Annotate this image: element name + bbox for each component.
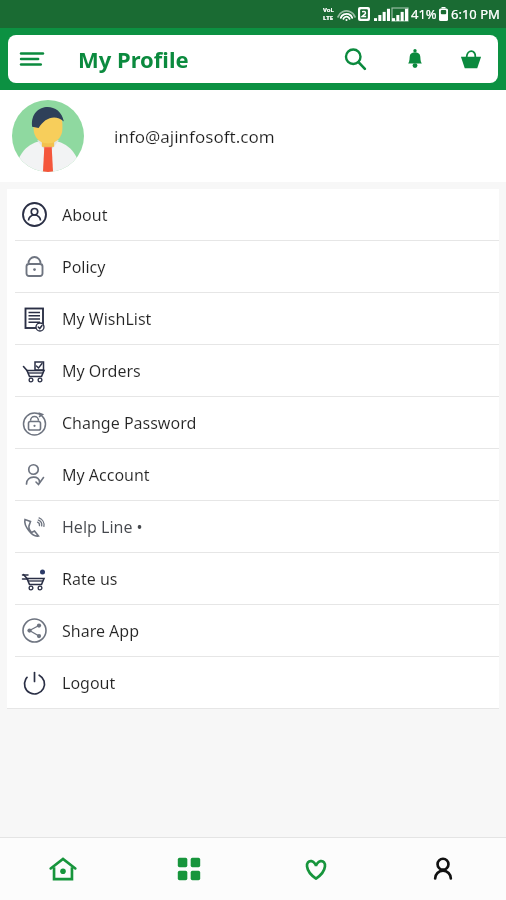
staticText: LTE <box>323 14 334 22</box>
staticText: Help Line • <box>62 516 143 538</box>
staticText: Change Password <box>62 412 197 434</box>
button[interactable]: Help Line • <box>7 501 499 552</box>
staticText: About <box>62 204 108 226</box>
staticText: Rate us <box>62 568 118 590</box>
staticText: Share App <box>62 620 140 642</box>
staticText: My WishList <box>62 308 152 330</box>
button[interactable]: Policy <box>7 241 499 292</box>
staticText: My Orders <box>62 360 141 382</box>
staticText: My Account <box>62 464 150 486</box>
staticText: Policy <box>62 256 106 278</box>
button[interactable]: My Account <box>7 449 499 500</box>
button[interactable]: My Orders <box>7 345 499 396</box>
button[interactable]: Home <box>0 838 126 900</box>
button[interactable]: Share App <box>7 605 499 656</box>
button[interactable]: Menu <box>8 35 56 83</box>
button[interactable]: Search <box>332 36 378 82</box>
button[interactable]: Cart <box>448 36 494 82</box>
staticText: My Profile <box>78 44 189 74</box>
staticText: info@ajinfosoft.com <box>114 125 275 148</box>
button[interactable]: Change Password <box>7 397 499 448</box>
staticText: 41% <box>411 5 437 23</box>
staticText: VoL <box>323 6 334 14</box>
button[interactable]: Rate us <box>7 553 499 604</box>
button[interactable]: Notifications <box>392 36 438 82</box>
staticText: Logout <box>62 672 116 694</box>
button[interactable]: Logout <box>7 657 499 708</box>
button[interactable]: My WishList <box>7 293 499 344</box>
button[interactable]: Wishlist <box>252 838 379 900</box>
button[interactable]: Categories <box>126 838 252 900</box>
button[interactable]: info@ajinfosoft.com <box>0 90 506 182</box>
staticText: 6:10 PM <box>451 5 500 23</box>
button[interactable]: Profile <box>379 838 506 900</box>
button[interactable]: About <box>7 189 499 240</box>
